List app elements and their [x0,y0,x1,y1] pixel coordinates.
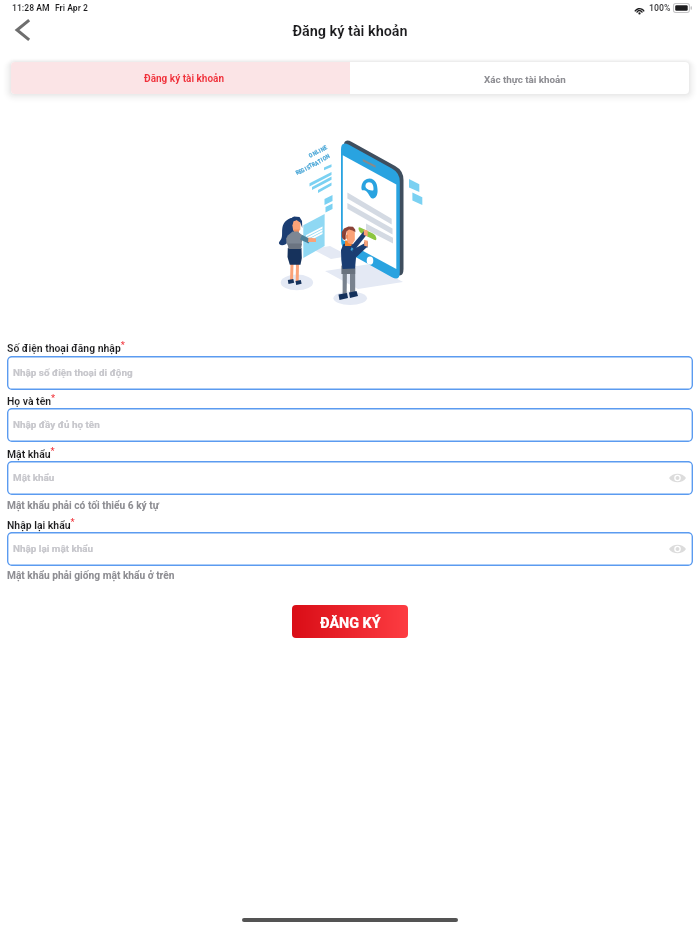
staticText: Fri Apr 2 [55,3,88,13]
staticText: Đăng ký tài khoản [0,23,700,40]
button[interactable]: Xác thực tài khoản [350,62,689,94]
button[interactable]: Nhập đầy đủ họ tên [7,408,693,442]
button[interactable]: Show password [665,537,689,561]
staticText: Nhập lại khẩu* [7,517,75,531]
staticText: 100% [649,3,671,13]
staticText: Họ và tên* [7,393,56,407]
staticText: Mật khẩu [13,472,55,484]
staticText: Nhập đầy đủ họ tên [13,419,100,431]
button[interactable]: Mật khẩu [7,461,693,495]
button[interactable]: Nhập số điện thoại di động [7,356,693,390]
button[interactable]: Show password [665,466,689,490]
staticText: 11:28 AM [12,3,50,13]
button[interactable]: Nhập lại mật khẩu [7,532,693,566]
staticText: Mật khẩu* [7,446,55,460]
staticText: Mật khẩu phải giống mật khẩu ở trên [7,570,175,582]
staticText: Đăng ký tài khoản [144,73,225,85]
staticText: Nhập lại mật khẩu [13,543,94,555]
button[interactable]: ĐĂNG KÝ [292,605,408,638]
staticText: Xác thực tài khoản [484,74,566,85]
staticText: Nhập số điện thoại di động [13,367,133,379]
button[interactable]: Đăng ký tài khoản [11,62,350,94]
staticText: Mật khẩu phải có tối thiểu 6 ký tự [7,500,159,512]
staticText: Số điện thoại đăng nhập* [7,340,125,354]
staticText: ĐĂNG KÝ [320,615,381,632]
button[interactable]: Back [4,12,40,48]
